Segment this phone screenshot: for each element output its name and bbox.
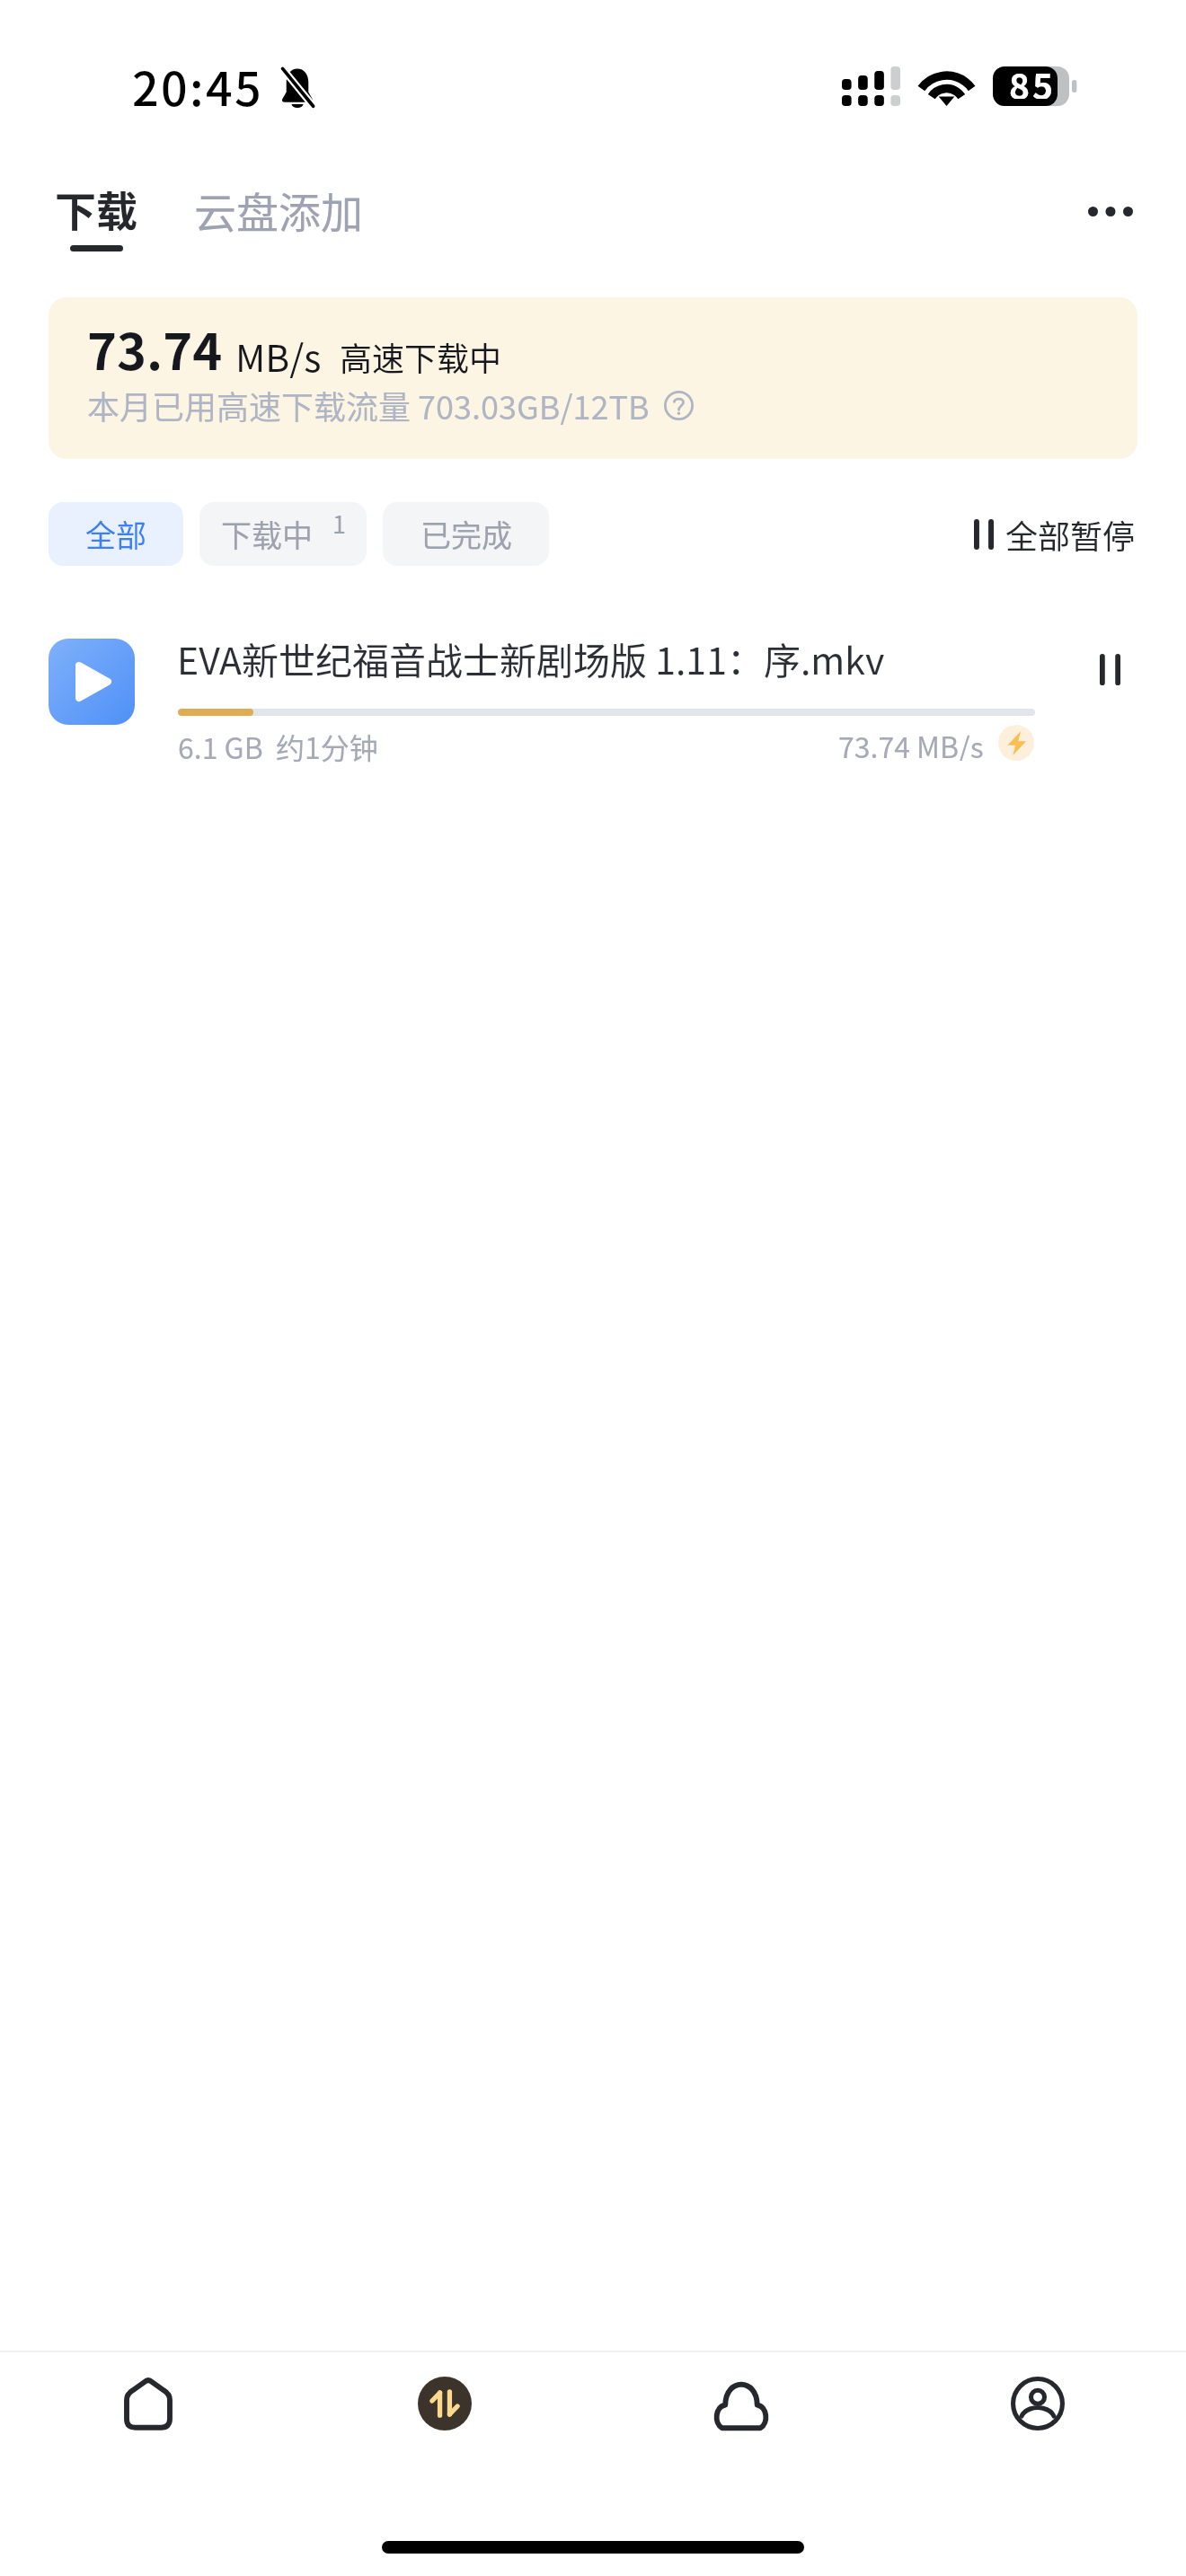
button[interactable]: 下载中 — [199, 502, 367, 566]
button[interactable]: Cloud — [668, 2342, 815, 2466]
button[interactable]: More options — [1066, 166, 1155, 256]
staticText: 73.74 — [87, 312, 223, 384]
staticText: 85 — [1009, 59, 1057, 99]
button[interactable]: Video file — [49, 639, 135, 725]
staticText: 本月已用高速下载流量 703.03GB/12TB — [87, 382, 650, 428]
staticText: 73.74 MB/s — [838, 725, 984, 761]
staticText: 下载 — [55, 179, 137, 239]
button[interactable]: Profile — [964, 2342, 1111, 2466]
button[interactable]: 下载 — [36, 167, 156, 268]
staticText: MB/s — [235, 329, 322, 382]
button[interactable]: 全部 — [49, 502, 183, 566]
staticText: EVA新世纪福音战士新剧场版 1.11：序.mkv — [177, 631, 885, 684]
staticText: 下载中 — [221, 512, 313, 556]
staticText: 高速下载中 — [340, 333, 502, 380]
staticText: 6.1 GB 约1分钟 — [178, 726, 378, 767]
button[interactable]: Home — [75, 2342, 222, 2466]
staticText: 全部 — [85, 512, 146, 556]
button[interactable]: Pause download — [1060, 620, 1159, 719]
staticText: 已完成 — [420, 512, 512, 556]
button[interactable]: 全部暂停 — [974, 502, 1136, 566]
button[interactable]: 已完成 — [383, 502, 549, 566]
staticText: 全部暂停 — [1005, 511, 1136, 558]
staticText: 云盘添加 — [194, 179, 363, 240]
button[interactable]: Transfers — [371, 2342, 518, 2466]
button[interactable]: 云盘添加 — [176, 167, 381, 250]
staticText: 1 — [332, 506, 346, 541]
button[interactable]: 73.74 — [49, 297, 1137, 459]
staticText: 20:45 — [132, 52, 264, 119]
